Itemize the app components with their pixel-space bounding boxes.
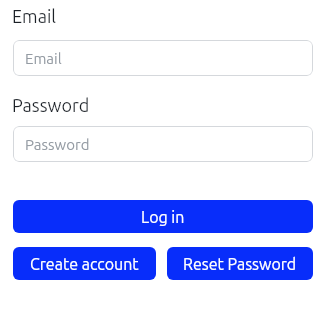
staticText: Create account xyxy=(30,255,139,273)
staticText: Email xyxy=(12,6,56,26)
button[interactable]: Password xyxy=(13,126,313,162)
button[interactable]: Reset Password xyxy=(167,247,313,280)
staticText: Log in xyxy=(141,208,185,226)
staticText: Email xyxy=(25,50,62,67)
staticText: Password xyxy=(25,136,90,153)
button[interactable]: Log in xyxy=(13,200,313,233)
button[interactable]: Email xyxy=(13,40,313,76)
staticText: Password xyxy=(12,95,90,115)
staticText: Reset Password xyxy=(183,255,297,273)
button[interactable]: Create account xyxy=(13,247,156,280)
